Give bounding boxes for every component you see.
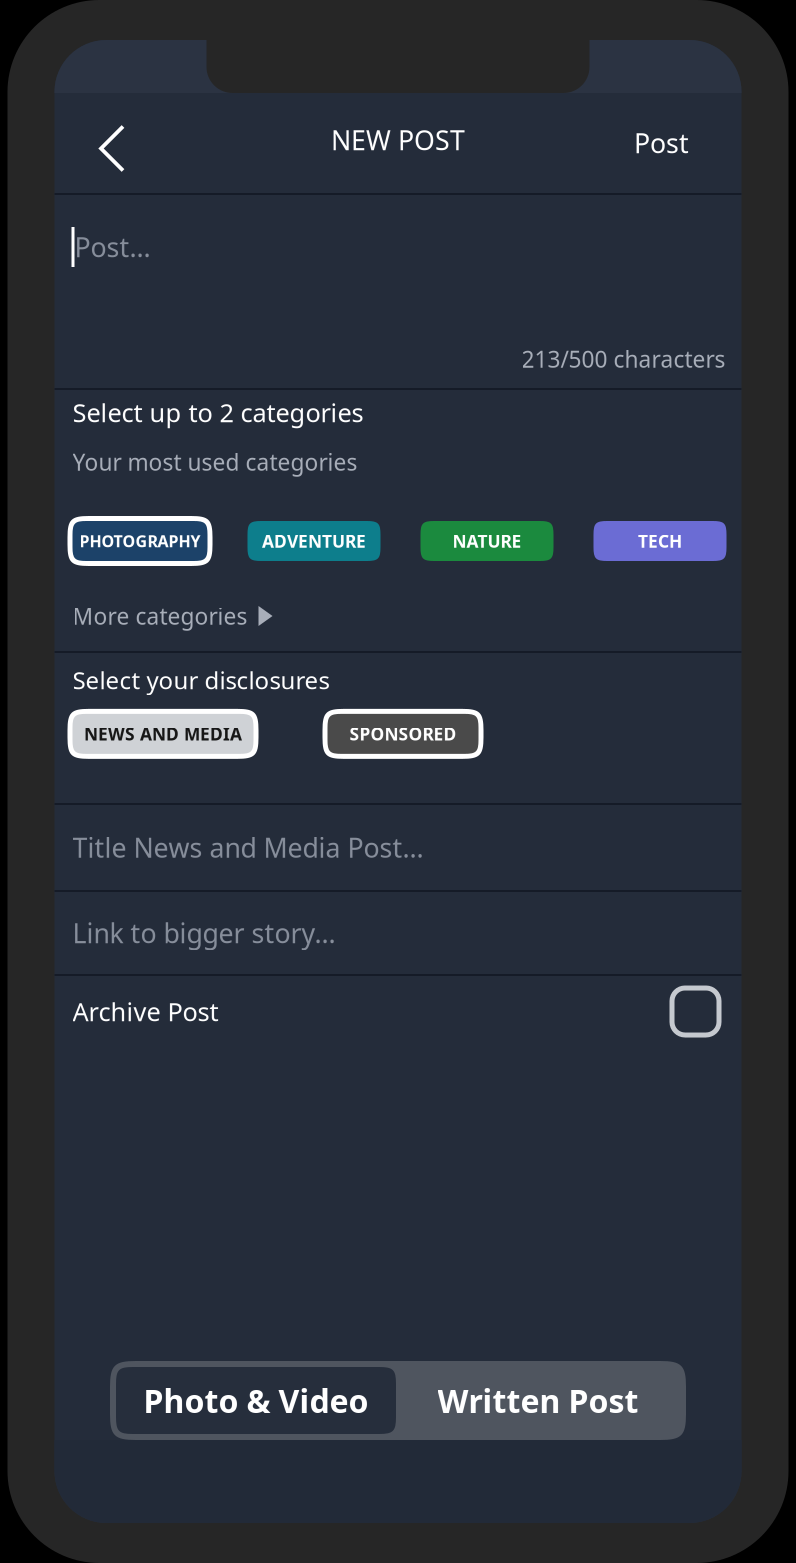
- staticText: Title News and Media Post...: [72, 830, 423, 865]
- staticText: Archive Post: [72, 995, 218, 1028]
- staticText: PHOTOGRAPHY: [79, 530, 200, 552]
- staticText: Post: [634, 125, 689, 161]
- staticText: Post...: [74, 229, 150, 265]
- staticText: Select up to 2 categories: [72, 396, 363, 429]
- button[interactable]: Post: [607, 93, 741, 193]
- button[interactable]: PHOTOGRAPHY: [67, 516, 212, 566]
- staticText: 213/500 characters: [521, 344, 725, 374]
- staticText: Photo & Video: [143, 1379, 368, 1422]
- button[interactable]: TECH: [588, 516, 731, 566]
- button[interactable]: More categories: [54, 591, 741, 651]
- staticText: NEWS AND MEDIA: [84, 722, 242, 745]
- button[interactable]: ADVENTURE: [242, 516, 385, 566]
- staticText: Select your disclosures: [72, 664, 329, 696]
- button[interactable]: SPONSORED: [322, 709, 483, 759]
- staticText: More categories: [72, 601, 247, 631]
- button[interactable]: NEWS AND MEDIA: [67, 709, 258, 759]
- button[interactable]: Link to bigger story...: [54, 892, 741, 974]
- staticText: NEW POST: [331, 122, 465, 158]
- button[interactable]: Archive Post: [54, 976, 741, 1047]
- button[interactable]: NATURE: [415, 516, 558, 566]
- staticText: TECH: [638, 529, 682, 552]
- staticText: Written Post: [437, 1379, 638, 1422]
- staticText: Link to bigger story...: [72, 915, 335, 951]
- button[interactable]: Written Post: [396, 1367, 680, 1434]
- staticText: NATURE: [452, 529, 521, 552]
- button[interactable]: Photo & Video: [116, 1367, 396, 1434]
- button[interactable]: Back: [54, 87, 169, 198]
- staticText: Your most used categories: [72, 447, 357, 477]
- button[interactable]: Title News and Media Post...: [54, 805, 741, 890]
- staticText: SPONSORED: [349, 722, 456, 745]
- staticText: ADVENTURE: [262, 529, 366, 552]
